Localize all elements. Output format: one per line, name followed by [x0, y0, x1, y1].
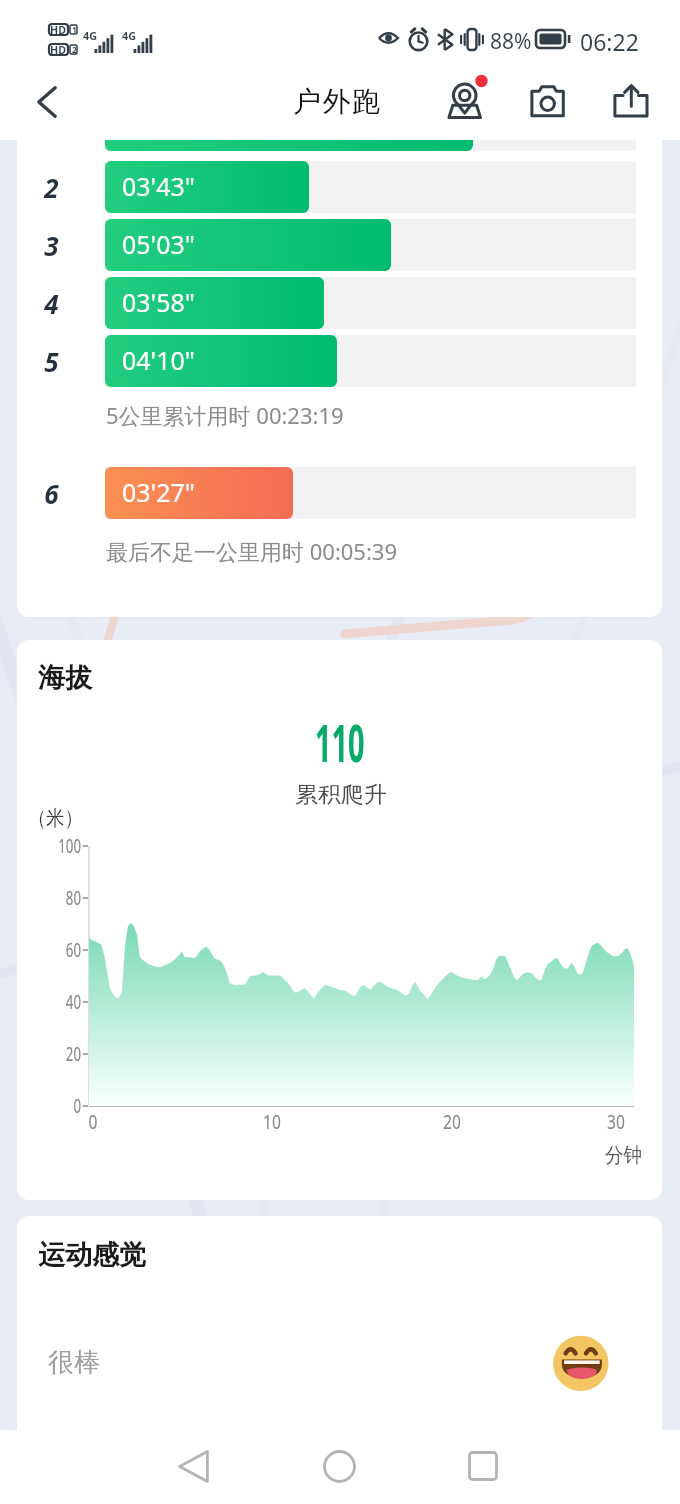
- button[interactable]: Recents: [457, 1440, 509, 1492]
- staticText: 110: [315, 706, 365, 777]
- staticText: 10: [256, 1109, 288, 1135]
- staticText: 累积爬升: [295, 781, 386, 809]
- staticText: （米）: [28, 805, 83, 831]
- staticText: HD: [50, 23, 66, 38]
- staticText: 80: [36, 885, 81, 911]
- staticText: 88%: [490, 27, 532, 56]
- staticText: 03'27": [122, 474, 195, 509]
- staticText: 最后不足一公里用时 00:05:39: [106, 536, 398, 566]
- staticText: 分钟: [605, 1143, 642, 1168]
- staticText: 2: [72, 44, 77, 55]
- button[interactable]: Camera: [520, 76, 576, 132]
- staticText: 户外跑: [293, 84, 382, 119]
- button[interactable]: Back: [167, 1440, 219, 1492]
- staticText: 0: [36, 1093, 81, 1119]
- staticText: 3: [17, 228, 86, 263]
- staticText: 海拔: [38, 661, 92, 695]
- staticText: 03'43": [122, 168, 195, 203]
- button[interactable]: Share: [604, 76, 660, 132]
- staticText: 20: [436, 1109, 468, 1135]
- staticText: 5: [17, 344, 86, 379]
- staticText: 4G: [122, 28, 136, 42]
- staticText: 4G: [83, 28, 97, 42]
- staticText: 5公里累计用时 00:23:19: [106, 400, 344, 430]
- staticText: 06:22: [580, 26, 639, 57]
- staticText: 4: [17, 286, 86, 321]
- staticText: 20: [36, 1041, 81, 1067]
- staticText: 03'58": [122, 284, 195, 319]
- staticText: 很棒: [48, 1346, 100, 1379]
- staticText: 2: [17, 170, 86, 205]
- staticText: HD: [50, 43, 66, 58]
- staticText: 1: [72, 24, 77, 35]
- staticText: 40: [36, 989, 81, 1015]
- staticText: 0: [77, 1109, 109, 1135]
- button[interactable]: Map location: [438, 76, 494, 132]
- staticText: 运动感觉: [38, 1238, 146, 1272]
- staticText: 30: [600, 1109, 632, 1135]
- staticText: 6: [17, 476, 86, 511]
- staticText: 04'10": [122, 342, 195, 377]
- staticText: 05'03": [122, 226, 195, 261]
- staticText: 100: [36, 833, 81, 859]
- button[interactable]: Back: [22, 77, 72, 127]
- staticText: 60: [36, 937, 81, 963]
- button[interactable]: Home: [313, 1440, 365, 1492]
